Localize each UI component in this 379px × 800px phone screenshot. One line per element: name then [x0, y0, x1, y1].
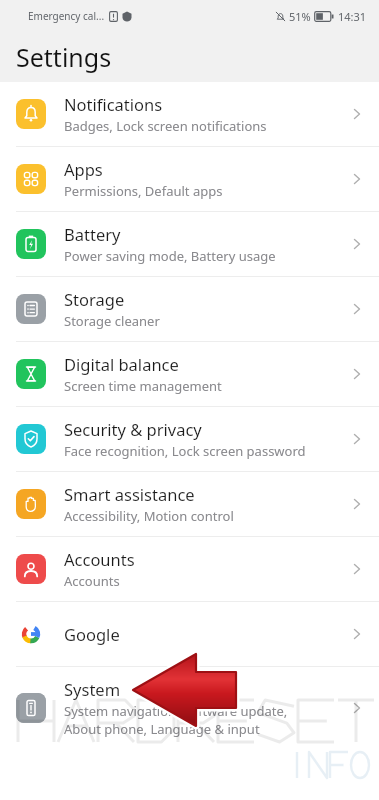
staticText: Accounts: [64, 572, 120, 590]
staticText: System navigation, Software update,: [64, 702, 288, 720]
staticText: 51%: [289, 9, 311, 24]
button[interactable]: Smart assistance: [0, 472, 379, 536]
staticText: Battery: [64, 223, 121, 245]
staticText: Smart assistance: [64, 483, 195, 505]
staticText: Accounts: [64, 548, 135, 570]
staticText: Badges, Lock screen notifications: [64, 117, 267, 135]
staticText: Screen time management: [64, 377, 222, 395]
staticText: Accessibility, Motion control: [64, 507, 234, 525]
staticText: Storage: [64, 288, 125, 310]
button[interactable]: Notifications: [0, 82, 379, 146]
button[interactable]: Accounts: [0, 537, 379, 601]
staticText: About phone, Language & input: [64, 720, 260, 738]
button[interactable]: Battery: [0, 212, 379, 276]
staticText: Settings: [16, 40, 112, 74]
staticText: Notifications: [64, 93, 163, 115]
staticText: Permissions, Default apps: [64, 182, 223, 200]
staticText: Digital balance: [64, 353, 179, 375]
button[interactable]: System: [0, 667, 379, 749]
button[interactable]: Security & privacy: [0, 407, 379, 471]
staticText: Power saving mode, Battery usage: [64, 247, 276, 265]
staticText: Google: [64, 623, 120, 645]
button[interactable]: Storage: [0, 277, 379, 341]
staticText: Emergency cal...: [28, 9, 105, 23]
button[interactable]: Google: [0, 602, 379, 666]
button[interactable]: Digital balance: [0, 342, 379, 406]
button[interactable]: Apps: [0, 147, 379, 211]
staticText: Security & privacy: [64, 418, 202, 440]
staticText: Storage cleaner: [64, 312, 160, 330]
staticText: Apps: [64, 158, 103, 180]
staticText: System: [64, 678, 121, 700]
staticText: Face recognition, Lock screen password: [64, 442, 306, 460]
staticText: 14:31: [338, 9, 367, 24]
